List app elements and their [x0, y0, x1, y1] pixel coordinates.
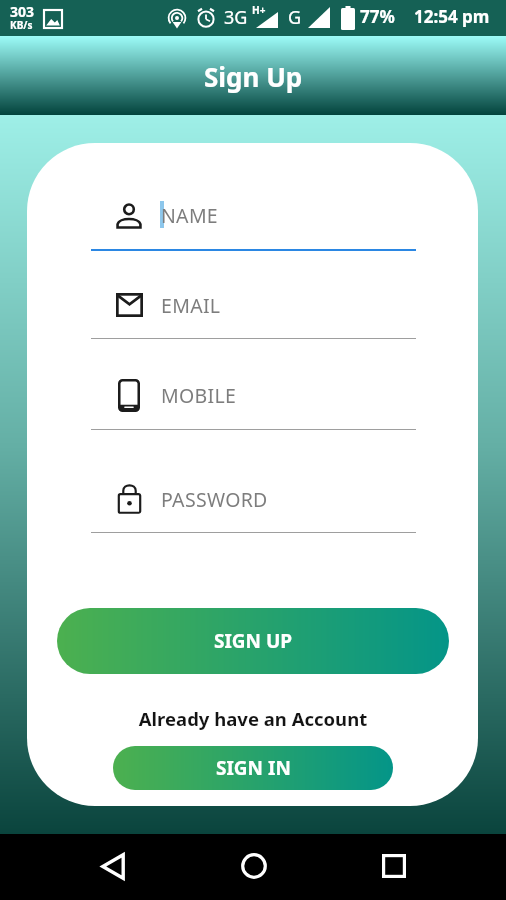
staticText: PASSWORD: [161, 486, 268, 513]
button[interactable]: PASSWORD: [91, 471, 416, 531]
button[interactable]: NAME: [91, 191, 416, 251]
button[interactable]: MOBILE: [91, 367, 416, 427]
button[interactable]: SIGN UP: [57, 608, 449, 674]
staticText: SIGN UP: [214, 628, 293, 654]
button[interactable]: Recent apps: [370, 842, 418, 890]
staticText: 12:54 pm: [414, 5, 490, 28]
staticText: Already have an Account: [0, 706, 506, 731]
staticText: 77%: [360, 5, 395, 28]
staticText: H+: [252, 3, 266, 17]
button[interactable]: SIGN IN: [113, 746, 393, 790]
staticText: 303: [10, 2, 35, 21]
staticText: G: [288, 5, 302, 30]
staticText: NAME: [161, 202, 219, 229]
button[interactable]: Home: [230, 842, 278, 890]
staticText: EMAIL: [161, 292, 221, 319]
button[interactable]: Back: [89, 842, 137, 890]
staticText: SIGN IN: [216, 755, 291, 781]
staticText: 3G: [224, 5, 248, 30]
staticText: Sign Up: [204, 59, 303, 94]
button[interactable]: EMAIL: [91, 281, 416, 341]
staticText: KB/s: [10, 18, 33, 32]
staticText: MOBILE: [161, 382, 237, 409]
